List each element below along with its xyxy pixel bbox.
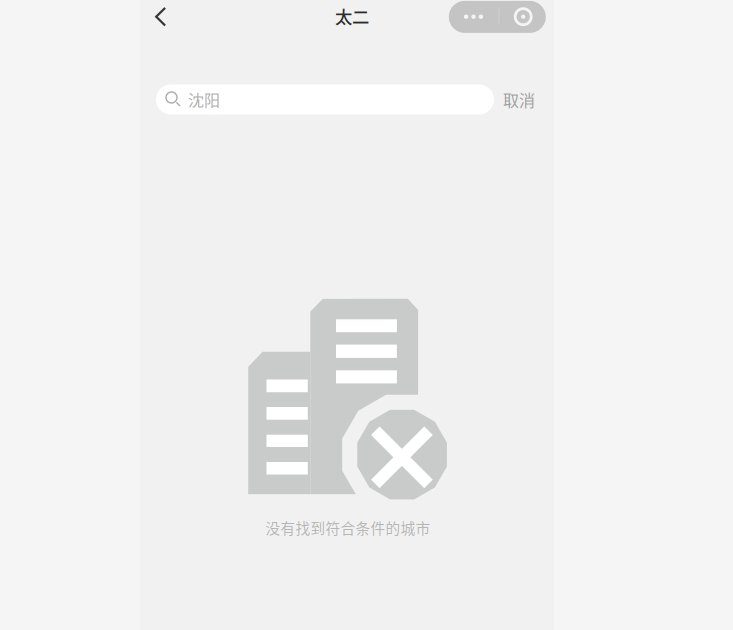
staticText: 太二 bbox=[335, 3, 369, 28]
staticText: 取消 bbox=[503, 88, 535, 111]
button[interactable]: 取消 bbox=[494, 84, 542, 114]
button[interactable]: More options bbox=[449, 1, 546, 33]
button[interactable]: Back bbox=[144, 0, 177, 36]
staticText: 没有找到符合条件的城市 bbox=[265, 517, 430, 538]
staticText: 沈阳 bbox=[188, 88, 220, 111]
